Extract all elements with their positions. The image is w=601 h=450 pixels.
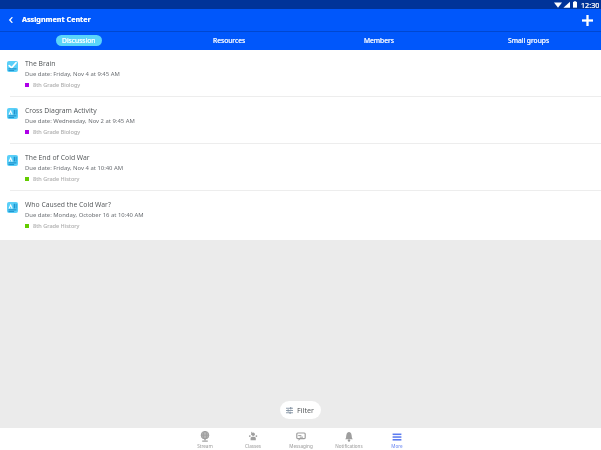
staticText: 12:30 [581,0,600,9]
staticText: Who Caused the Cold War? [25,200,111,209]
staticText: 8th Grade History [33,175,80,183]
staticText: Small groups [508,36,550,45]
staticText: Due date: Friday, Nov 4 at 10:40 AM [25,164,124,172]
button[interactable]: Add [579,12,595,28]
staticText: Members [364,36,394,45]
button[interactable]: Filter [280,401,321,419]
staticText: The Brain [25,59,56,68]
staticText: 8th Grade Biology [33,128,81,136]
button[interactable]: Members [304,32,454,50]
staticText: Stream [197,443,213,449]
button[interactable]: Classes [229,428,277,450]
button[interactable]: Cross Diagram Activity [0,97,601,143]
button[interactable]: The End of Cold War [0,144,601,190]
staticText: Notifications [335,443,363,449]
staticText: Cross Diagram Activity [25,106,97,115]
staticText: Due date: Wednesday, Nov 2 at 9:45 AM [25,117,135,125]
button[interactable]: Back [3,12,19,28]
button[interactable]: Resources [154,32,304,50]
staticText: Discussion [62,36,96,45]
staticText: Resources [213,36,246,45]
button[interactable]: Small groups [454,32,601,50]
button[interactable]: Messaging [277,428,325,450]
staticText: Due date: Monday, October 16 at 10:40 AM [25,211,144,219]
button[interactable]: Who Caused the Cold War? [0,191,601,237]
staticText: Classes [245,443,261,449]
staticText: Filter [297,405,315,415]
staticText: The End of Cold War [25,153,90,162]
staticText: More [391,443,403,449]
button[interactable]: Notifications [325,428,373,450]
staticText: 8th Grade History [33,222,80,230]
staticText: Due date: Friday, Nov 4 at 9:45 AM [25,70,120,78]
button[interactable]: The Brain [0,50,601,96]
staticText: Assignment Center [22,14,91,24]
staticText: 8th Grade Biology [33,81,81,89]
button[interactable]: Stream [181,428,229,450]
button[interactable]: Discussion [3,32,154,50]
staticText: Messaging [289,443,313,449]
button[interactable]: More [373,428,421,450]
